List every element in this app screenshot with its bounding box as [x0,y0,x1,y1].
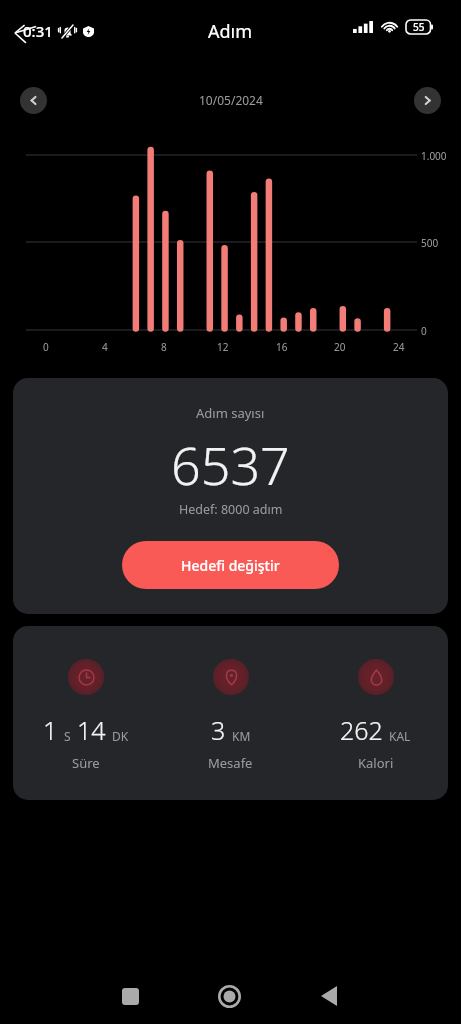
staticText: 3 [211,713,226,747]
staticText: 0 [43,340,49,354]
staticText: 24 [393,340,405,354]
staticText: 6537 [171,429,290,500]
staticText: 14 [77,713,106,747]
staticText: Hedefi değiştir [181,556,280,575]
staticText: 0:31 [23,21,53,41]
staticText: 12 [217,340,229,354]
staticText: 0 [421,324,427,338]
staticText: 55 [413,20,425,34]
staticText: DK [112,728,129,744]
staticText: S [64,728,71,744]
button[interactable]: Next day [414,87,441,114]
staticText: 1 [43,713,58,747]
staticText: Süre [72,754,100,772]
staticText: KM [232,728,251,744]
button[interactable]: Back [279,970,378,1022]
staticText: Hedef: 8000 adım [179,501,283,518]
staticText: 10/05/2024 [199,92,263,108]
staticText: 16 [276,340,288,354]
staticText: 20 [334,340,346,354]
staticText: Adım [208,19,253,44]
staticText: Kalori [358,754,394,772]
staticText: 262 [340,713,383,747]
staticText: KAL [389,728,411,744]
button[interactable]: Home [180,970,279,1022]
staticText: 1.000 [421,149,447,163]
staticText: 4 [102,340,108,354]
staticText: 500 [421,236,439,250]
button[interactable]: Previous day [20,87,47,114]
staticText: 8 [161,340,167,354]
staticText: Mesafe [208,754,253,772]
button[interactable]: Hedefi değiştir [122,541,339,589]
button[interactable]: Recent apps [81,970,180,1022]
staticText: Adım sayısı [196,404,265,422]
